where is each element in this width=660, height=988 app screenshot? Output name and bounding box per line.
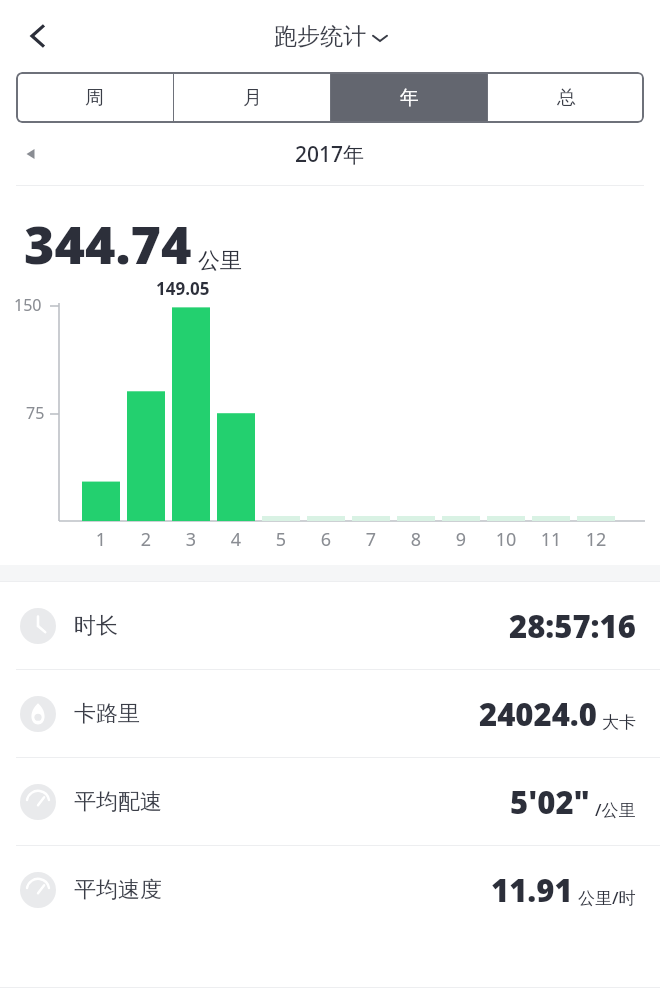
staticText: 28:57:16 [509,605,636,647]
staticText: 11.91 [491,869,573,911]
staticText: 2017年 [295,140,365,169]
staticText: 2 [132,527,160,552]
staticText: 1 [87,527,115,552]
staticText: 9 [447,527,475,552]
staticText: 6 [312,527,340,552]
button[interactable]: Previous year [8,131,54,177]
staticText: /公里 [595,798,636,821]
staticText: 10 [492,527,520,552]
staticText: 月 [243,86,262,110]
staticText: 平均速度 [74,876,162,904]
button[interactable]: 周 [16,72,173,123]
button[interactable]: 时长 [0,582,660,669]
staticText: 150 [14,294,42,316]
button[interactable]: Back [10,8,66,64]
staticText: 3 [177,527,205,552]
staticText: 跑步统计 [274,22,366,51]
button[interactable]: 跑步统计 [274,22,387,51]
staticText: 平均配速 [74,788,162,816]
staticText: 公里/时 [578,886,636,909]
staticText: 大卡 [602,712,636,733]
button[interactable]: 年 [331,72,487,123]
staticText: 5 [267,527,295,552]
staticText: 24024.0 [479,693,597,735]
staticText: 75 [26,402,45,424]
staticText: 12 [582,527,610,552]
staticText: 4 [222,527,250,552]
staticText: 11 [537,527,565,552]
button[interactable]: 总 [488,72,644,123]
staticText: 149.05 [156,277,210,300]
button[interactable]: 平均速度 [0,846,660,933]
button[interactable]: 平均配速 [0,758,660,845]
staticText: 8 [402,527,430,552]
button[interactable]: 月 [174,72,330,123]
staticText: 卡路里 [74,700,140,728]
staticText: 时长 [74,612,118,640]
staticText: 周 [85,86,104,110]
staticText: 年 [400,86,419,110]
button[interactable]: 卡路里 [0,670,660,757]
staticText: 5'02" [510,781,590,823]
staticText: 公里 [198,247,242,275]
staticText: 总 [557,86,576,110]
staticText: 344.74 [24,208,192,279]
staticText: 7 [357,527,385,552]
